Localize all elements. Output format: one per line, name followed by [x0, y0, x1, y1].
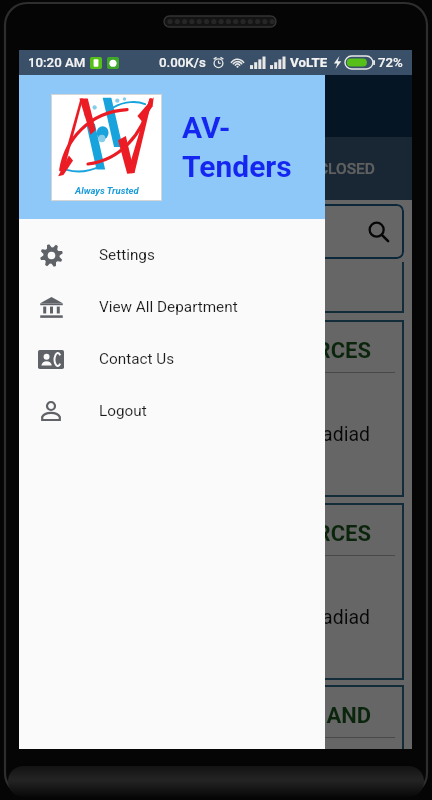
- other: Search: [366, 219, 392, 245]
- button[interactable]: Settings: [19, 229, 325, 281]
- staticText: 72%: [378, 55, 403, 71]
- staticText: WATER RESOURCES: [39, 521, 371, 547]
- button[interactable]: ROADS AND: [27, 685, 404, 749]
- button[interactable]: Open navigation drawer: [33, 92, 61, 120]
- button[interactable]: Logout: [19, 385, 325, 437]
- button[interactable]: WATER RESOURCES: [27, 262, 404, 313]
- staticText: AV-Tenders: [83, 94, 193, 119]
- staticText: WATER RESOURCES: [39, 338, 371, 364]
- staticText: Tenders: [182, 149, 292, 184]
- staticText: LIVE: [69, 160, 101, 178]
- staticText: ROADS AND: [39, 703, 371, 729]
- staticText: View All Department: [99, 298, 238, 316]
- button[interactable]: UPCOMING: [150, 137, 281, 200]
- staticText: 10:20 AM: [28, 55, 86, 71]
- button[interactable]: Search by Department / Location: [27, 204, 404, 259]
- button[interactable]: View All Department: [19, 281, 325, 333]
- staticText: Always Trusted: [75, 185, 139, 196]
- staticText: Settings: [99, 246, 155, 264]
- button[interactable]: WATER RESOURCES: [27, 320, 404, 497]
- staticText: UPCOMING: [175, 160, 256, 178]
- staticText: VoLTE: [290, 55, 328, 71]
- staticText: Contact Us: [99, 350, 175, 368]
- staticText: Logout: [99, 402, 147, 420]
- button[interactable]: WATER RESOURCES: [27, 503, 404, 680]
- staticText: 0.00K/s: [159, 55, 206, 71]
- staticText: Tender Location : Nadiad: [39, 606, 370, 629]
- button[interactable]: CLOSED: [281, 137, 412, 200]
- button[interactable]: Contact Us: [19, 333, 325, 385]
- staticText: Tender Location : Nadiad: [39, 423, 370, 446]
- staticText: AV-: [182, 110, 231, 145]
- staticText: CLOSED: [318, 160, 375, 178]
- button[interactable]: LIVE: [19, 137, 150, 200]
